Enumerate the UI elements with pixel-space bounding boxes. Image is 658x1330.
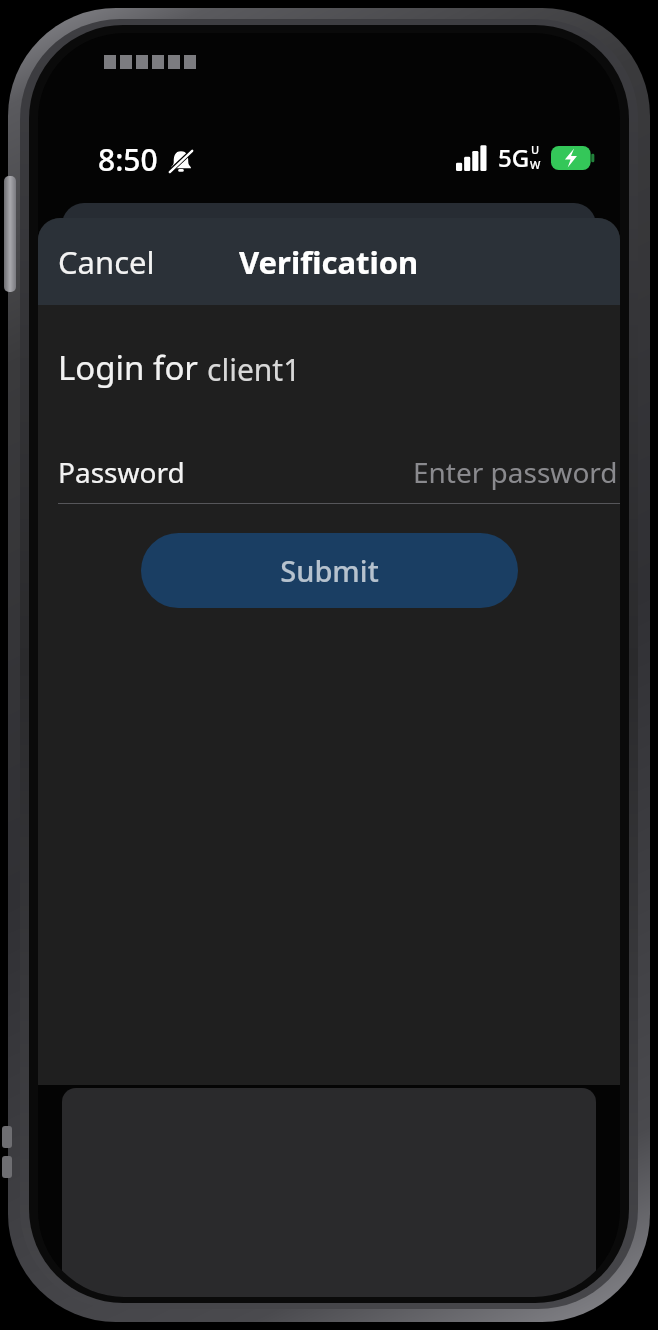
staticText: Enter password xyxy=(413,453,618,491)
staticText: 8:50 xyxy=(98,139,158,180)
staticText: Submit xyxy=(280,551,379,590)
staticText: client1 xyxy=(207,349,301,390)
staticText: 5G xyxy=(498,141,530,174)
staticText: W xyxy=(530,157,541,172)
button[interactable]: Submit xyxy=(141,533,518,608)
button[interactable]: Password xyxy=(38,440,620,503)
button[interactable]: Cancel xyxy=(38,229,175,295)
staticText: U xyxy=(531,142,540,157)
staticText: Verification xyxy=(239,241,419,283)
staticText: Password xyxy=(58,453,185,491)
staticText: Login for xyxy=(58,345,207,390)
staticText: Cancel xyxy=(58,241,155,283)
